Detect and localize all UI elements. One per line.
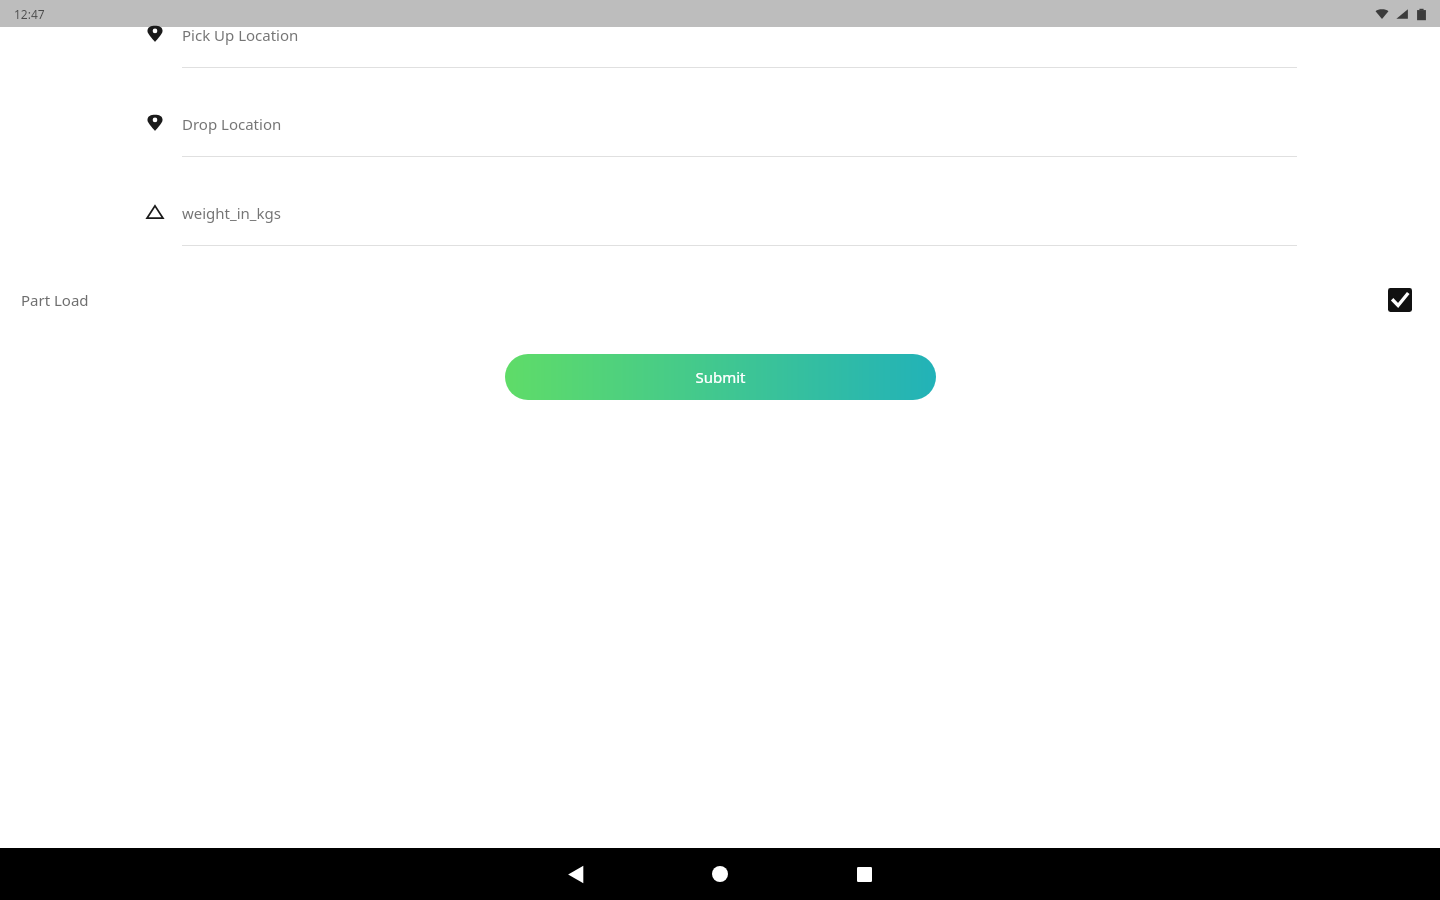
staticText: Drop Location [182, 114, 282, 134]
button[interactable]: Drop Location [0, 111, 1440, 179]
staticText: weight_in_kgs [182, 203, 281, 223]
staticText: Pick Up Location [182, 25, 299, 45]
button[interactable]: Submit [505, 354, 936, 400]
button[interactable]: weight_in_kgs [0, 200, 1440, 268]
button[interactable]: Back [552, 850, 600, 898]
button[interactable]: Recent apps [840, 850, 888, 898]
staticText: 12:47 [14, 6, 45, 22]
staticText: Submit [695, 367, 746, 387]
button[interactable]: Pick Up Location [0, 22, 1440, 90]
staticText: Part Load [21, 290, 89, 310]
button[interactable]: Part Load checkbox, checked [1388, 288, 1412, 312]
button[interactable]: Home [696, 850, 744, 898]
